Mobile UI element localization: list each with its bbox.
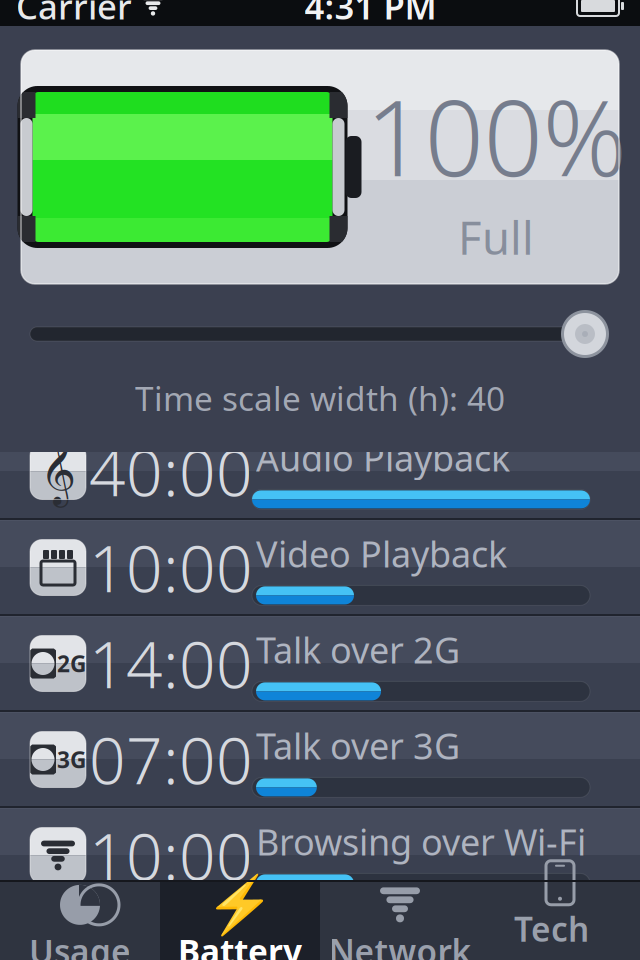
staticText: Time scale width (h): 40	[135, 376, 505, 420]
staticText: Usage	[29, 929, 131, 960]
button[interactable]: 10:00	[0, 518, 640, 614]
staticText: Full	[458, 207, 534, 267]
staticText: 𝄞	[40, 442, 76, 501]
staticText: Audio Playback	[256, 434, 510, 481]
button[interactable]: 𝄞	[0, 422, 640, 518]
staticText: 14:00	[89, 621, 253, 706]
staticText: 40:00	[89, 429, 253, 514]
staticText: 4:31 PM	[304, 0, 436, 29]
staticText: 2G	[57, 648, 86, 678]
staticText: Talk over 3G	[256, 722, 460, 769]
staticText: Talk over 2G	[256, 626, 460, 673]
button[interactable]: ⚡	[160, 880, 320, 960]
button[interactable]: 2G	[0, 614, 640, 710]
staticText: ⚡	[205, 873, 275, 937]
staticText: 10:00	[89, 525, 253, 610]
staticText: 10:00	[89, 813, 253, 898]
staticText: Tech Specs	[514, 907, 606, 960]
button[interactable]: Time scale width slider	[0, 306, 640, 362]
button[interactable]: Tech Specs	[480, 880, 640, 960]
staticText: 100%	[365, 67, 626, 205]
button[interactable]: Network	[320, 880, 480, 960]
staticText: 3G	[57, 744, 86, 774]
button[interactable]: Usage	[0, 880, 160, 960]
button[interactable]: 3G	[0, 710, 640, 806]
button[interactable]: 10:00	[0, 806, 640, 902]
staticText: Network	[328, 929, 471, 960]
staticText: 07:00	[89, 717, 253, 802]
staticText: Carrier	[16, 0, 132, 29]
staticText: Battery	[178, 929, 302, 960]
staticText: Video Playback	[256, 530, 507, 577]
staticText: Browsing over Wi-Fi	[256, 818, 586, 865]
